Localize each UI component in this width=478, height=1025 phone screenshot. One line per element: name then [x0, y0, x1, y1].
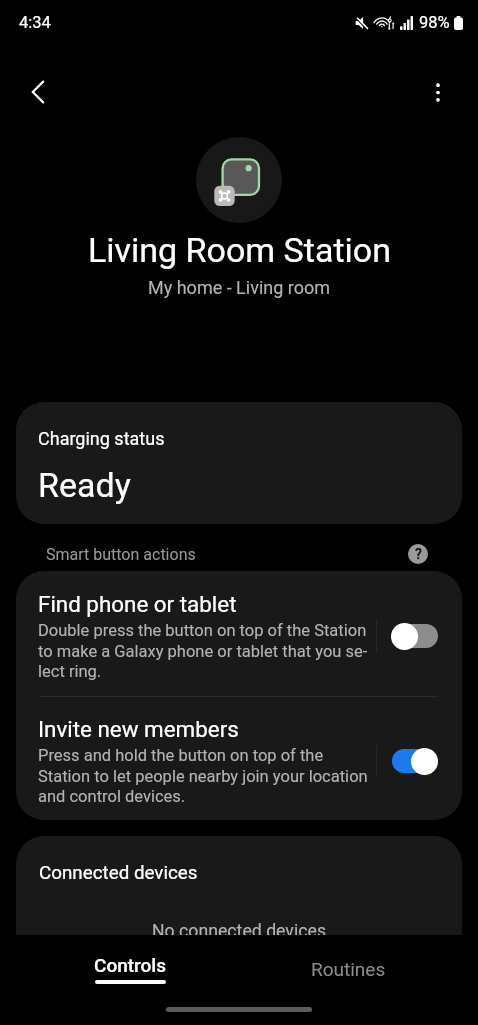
staticText: Ready [38, 465, 131, 505]
staticText: Controls [94, 954, 166, 976]
staticText: Find phone or tablet [38, 591, 237, 617]
button[interactable]: Find phone or tablet [16, 571, 462, 696]
staticText: Routines [311, 958, 386, 980]
button[interactable]: Switch on [391, 747, 438, 775]
button[interactable]: Routines [239, 945, 458, 993]
staticText: Smart button actions [46, 545, 196, 564]
staticText: Invite new members [38, 716, 239, 742]
staticText: 98% [419, 13, 450, 32]
staticText: ? [415, 546, 422, 562]
staticText: My home - Living room [148, 277, 331, 298]
staticText: Press and hold the button on top of the … [38, 746, 368, 806]
button[interactable]: Navigate up [14, 68, 62, 116]
staticText: Connected devices [39, 862, 198, 884]
button[interactable]: Charging status [16, 402, 462, 524]
staticText: 4:34 [19, 13, 51, 32]
button[interactable]: Switch off [391, 622, 438, 650]
staticText: Double press the button on top of the St… [38, 621, 368, 681]
button[interactable]: Help [405, 541, 431, 567]
staticText: Charging status [38, 428, 165, 449]
staticText: Living Room Station [88, 230, 391, 270]
button[interactable]: Invite new members [16, 697, 462, 820]
staticText: No connected devices [16, 921, 462, 935]
button[interactable]: More options [414, 68, 462, 116]
button[interactable]: Controls [20, 945, 239, 993]
